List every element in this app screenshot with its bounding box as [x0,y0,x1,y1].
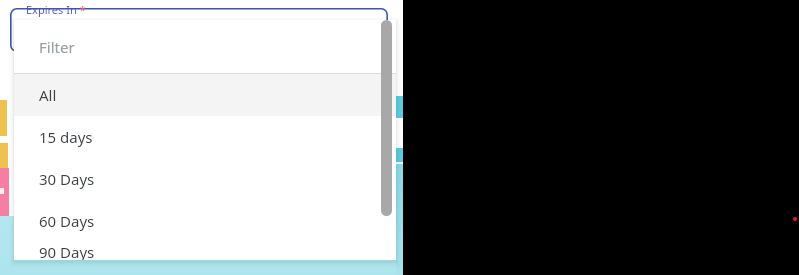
staticText: 90 Days [39,242,95,260]
button[interactable]: Expires In [10,8,388,52]
staticText: All [39,85,57,105]
staticText: 30 Days [39,169,95,189]
button[interactable]: Filter [14,20,396,74]
staticText: Expires In [26,2,77,17]
staticText: * [77,2,86,17]
button[interactable]: 60 Days [14,200,396,242]
staticText: 60 Days [39,211,95,231]
button[interactable]: 30 Days [14,158,396,200]
button[interactable]: All [14,74,396,116]
staticText: 15 days [39,127,93,147]
button[interactable]: 90 Days [14,242,396,260]
staticText: Filter [39,37,75,57]
other: Scroll list [381,20,392,216]
button[interactable]: 15 days [14,116,396,158]
